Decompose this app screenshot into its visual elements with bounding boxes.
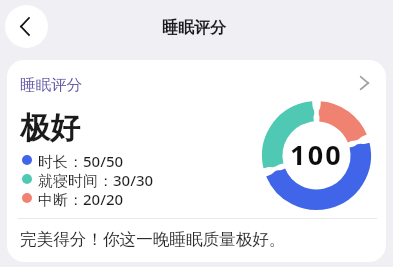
staticText: 完美得分！你这一晚睡眠质量极好。 bbox=[20, 229, 286, 250]
staticText: 极好 bbox=[20, 109, 80, 147]
staticText: 中断：20/20 bbox=[38, 189, 124, 207]
staticText: 睡眠评分 bbox=[20, 75, 82, 95]
staticText: 100 bbox=[262, 136, 371, 173]
staticText: 睡眠评分 bbox=[162, 18, 226, 38]
staticText: 就寝时间：30/30 bbox=[38, 170, 154, 188]
staticText: 时长：50/50 bbox=[38, 151, 124, 169]
button[interactable]: Back bbox=[5, 5, 48, 48]
button[interactable]: 睡眠评分 bbox=[7, 60, 386, 109]
